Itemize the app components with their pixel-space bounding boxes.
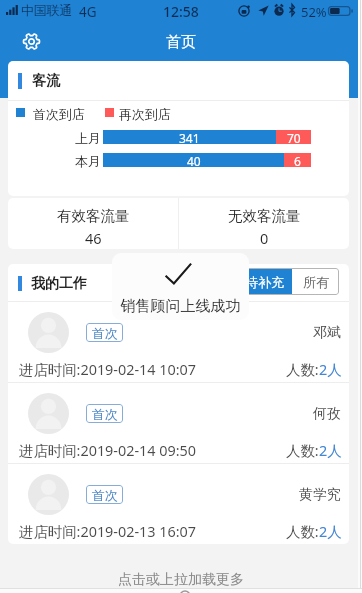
staticText: 点击或上拉加载更多 (0, 571, 362, 589)
button[interactable]: 首次 (8, 464, 349, 544)
staticText: 首次到店 (33, 106, 85, 122)
staticText: 人数: (286, 360, 319, 380)
staticText: 何孜 (313, 405, 341, 423)
button[interactable]: 首次 (8, 302, 349, 383)
staticText: 2人 (319, 360, 342, 380)
staticText: 0 (260, 228, 269, 248)
staticText: 本月 (75, 153, 101, 169)
staticText: 46 (85, 228, 102, 248)
staticText: 首页 (166, 33, 196, 52)
staticText: 52% (301, 3, 327, 21)
button[interactable]: 待补充 (236, 268, 292, 295)
staticText: 销售顾问上线成功 (112, 297, 249, 316)
staticText: 我的工作 (31, 275, 87, 293)
staticText: 2人 (319, 441, 342, 461)
staticText: 4G (79, 3, 97, 21)
button[interactable]: 所有 (292, 268, 339, 295)
staticText: 再次到店 (119, 106, 171, 122)
button[interactable]: 首次 (8, 383, 349, 464)
staticText: 12:58 (163, 2, 199, 21)
staticText: 2人 (319, 522, 342, 542)
staticText: 首次 (92, 487, 118, 503)
staticText: 341 (179, 130, 200, 144)
staticText: 进店时间:2019-02-14 10:07 (19, 360, 197, 380)
staticText: 黄学究 (299, 486, 341, 504)
staticText: 进店时间:2019-02-14 09:50 (19, 441, 197, 461)
staticText: 上月 (75, 130, 101, 146)
staticText: 所有 (303, 274, 329, 290)
staticText: 邓斌 (313, 324, 341, 342)
staticText: 中国联通 (21, 3, 73, 19)
staticText: 有效客流量 (57, 207, 130, 225)
button[interactable]: Settings (23, 33, 40, 50)
staticText: 进店时间:2019-02-13 16:07 (19, 522, 197, 542)
staticText: 待补充 (245, 274, 284, 290)
staticText: 客流 (32, 72, 60, 90)
staticText: 6 (294, 153, 301, 167)
staticText: 首次 (92, 406, 118, 422)
button[interactable]: 无效客流量 (179, 198, 349, 249)
staticText: 40 (187, 153, 201, 167)
staticText: 首次 (92, 325, 118, 341)
staticText: 无效客流量 (228, 207, 301, 225)
button[interactable]: 有效客流量 (8, 198, 178, 249)
staticText: 人数: (286, 441, 319, 461)
staticText: 70 (287, 130, 301, 144)
staticText: 人数: (286, 522, 319, 542)
